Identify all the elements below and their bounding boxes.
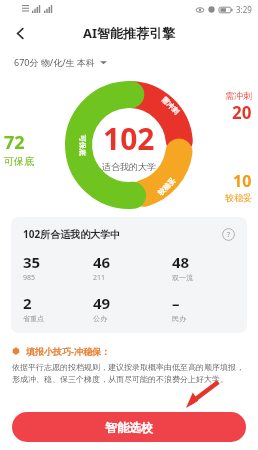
staticText: 102 (103, 118, 155, 159)
staticText: AI智能推荐引擎 (83, 24, 176, 42)
button[interactable]: Back (6, 19, 34, 47)
staticText: 民办 (172, 314, 186, 323)
staticText: 依据平行志愿的投档规则，建议按录取概率由低至高的顺序填报，形成冲、稳、保三个梯度… (12, 362, 246, 384)
staticText: 670分 物/化/生 本科 (14, 56, 95, 68)
button[interactable]: Help (222, 228, 235, 241)
staticText: 省重点 (23, 314, 44, 323)
staticText: 公办 (93, 314, 107, 323)
staticText: 46 (93, 252, 111, 272)
staticText: 可保底 (4, 155, 34, 168)
staticText: 需冲刺 (160, 95, 181, 116)
staticText: 需冲刺 (225, 90, 252, 101)
staticText: 2 (23, 293, 32, 313)
staticText: 35 (23, 252, 41, 272)
staticText: 985 (23, 273, 36, 283)
staticText: 211 (93, 273, 106, 283)
staticText: ? (227, 230, 231, 240)
staticText: – (172, 293, 180, 313)
staticText: 72 (4, 130, 25, 155)
staticText: 10 (233, 170, 252, 192)
staticText: 102所合适我的大学中 (23, 227, 121, 241)
staticText: 20 (232, 101, 252, 124)
button[interactable]: 智能选校 (12, 412, 246, 442)
staticText: 3:29 (236, 4, 252, 15)
staticText: 较稳妥 (156, 176, 177, 197)
staticText: 智能选校 (105, 420, 153, 435)
staticText: 适合我的大学 (102, 161, 156, 172)
staticText: 较稳妥 (225, 192, 252, 203)
button[interactable]: 670分 物/化/生 本科 (14, 56, 258, 68)
staticText: 可保底 (78, 135, 87, 156)
staticText: 双一流 (172, 273, 193, 282)
staticText: 48 (172, 252, 190, 272)
staticText: 填报小技巧-冲稳保： (26, 345, 110, 357)
staticText: 49 (93, 293, 111, 313)
